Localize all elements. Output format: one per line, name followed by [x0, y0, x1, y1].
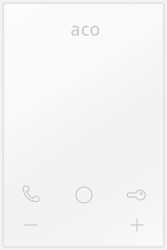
button[interactable]: Answer call: [8, 178, 54, 210]
button[interactable]: Talk: [61, 179, 107, 211]
button[interactable]: Unlock door: [113, 179, 159, 211]
button[interactable]: Volume up: [116, 212, 158, 238]
button[interactable]: Volume down: [10, 212, 52, 238]
staticText: aco: [70, 17, 100, 40]
